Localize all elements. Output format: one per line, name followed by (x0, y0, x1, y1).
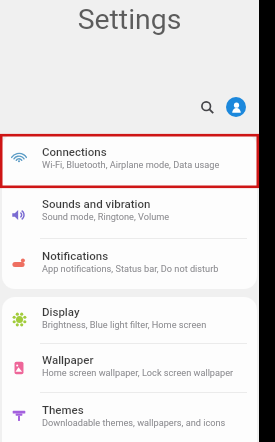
staticText: Themes (42, 403, 84, 416)
button[interactable]: Account (222, 93, 250, 121)
staticText: Home screen wallpaper, Lock screen wallp… (42, 367, 234, 378)
staticText: Downloadable themes, wallpapers, and ico… (42, 417, 226, 428)
button[interactable]: Connections (2, 134, 257, 186)
staticText: Connections (42, 145, 107, 158)
staticText: Notifications (42, 249, 109, 262)
button[interactable]: Wallpaper (2, 344, 257, 392)
staticText: Settings (0, 3, 259, 36)
staticText: Wallpaper (42, 353, 94, 366)
staticText: Sound mode, Ringtone, Volume (42, 211, 170, 222)
button[interactable]: Themes (2, 393, 257, 442)
staticText: Display (42, 305, 80, 318)
button[interactable]: Display (2, 297, 257, 343)
button[interactable]: Notifications (2, 239, 257, 289)
staticText: Brightness, Blue light filter, Home scre… (42, 319, 207, 330)
button[interactable]: Search (194, 94, 221, 121)
staticText: Wi-Fi, Bluetooth, Airplane mode, Data us… (42, 159, 220, 170)
button[interactable]: Sounds and vibration (2, 187, 257, 238)
staticText: Sounds and vibration (42, 197, 151, 210)
staticText: App notifications, Status bar, Do not di… (42, 263, 219, 274)
